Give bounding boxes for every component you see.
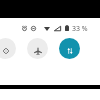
button[interactable]: Auto rotate [0,38,16,59]
button[interactable]: Mobile data [59,38,80,59]
button[interactable]: Airplane mode [27,38,48,59]
staticText: 33 % [72,24,88,32]
